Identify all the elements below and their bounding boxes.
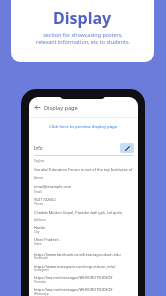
button[interactable]: Edit — [120, 143, 134, 153]
staticText: section for showcasing posters, relevant… — [36, 31, 130, 45]
button[interactable]: Click here to preview display page — [29, 121, 138, 130]
staticText: Display page — [44, 104, 78, 112]
staticText: 9021742662 — [34, 197, 56, 202]
staticText: email@example.com — [34, 184, 72, 189]
button[interactable] — [29, 101, 138, 117]
staticText: Facebook — [34, 256, 48, 260]
staticText: Gurukul Education Forum is one of the to… — [34, 167, 133, 172]
staticText: Instagram — [34, 268, 50, 272]
staticText: State — [34, 242, 42, 246]
staticText: Display — [53, 7, 112, 29]
staticText: Phone — [34, 202, 44, 206]
staticText: https://wa.me/messages/WHXOROTSDE8OY — [34, 275, 113, 280]
staticText: City — [34, 230, 40, 234]
staticText: https://www.facebook.com/kesariagurukum.… — [34, 252, 121, 257]
staticText: Whatsapp — [34, 292, 49, 296]
staticText: Click here to preview display page — [49, 123, 118, 129]
staticText: Email — [34, 190, 42, 194]
staticText: Chadda Mutton Gopal, Parathe wali gali, … — [34, 210, 123, 215]
button[interactable]: Back — [32, 102, 42, 112]
staticText: https://www.instagram.com/orgurukum_edu/ — [34, 264, 116, 269]
staticText: https://wa.me/messages/WHXOROTSDE8OY — [34, 287, 113, 292]
staticText: Info — [34, 145, 43, 151]
staticText: Youtube — [34, 280, 47, 284]
staticText: Noida — [34, 225, 45, 230]
staticText: Address — [34, 218, 46, 222]
staticText: Uttar Pradesh — [34, 237, 59, 242]
staticText: Tagline — [34, 159, 45, 163]
staticText: About — [34, 176, 43, 180]
